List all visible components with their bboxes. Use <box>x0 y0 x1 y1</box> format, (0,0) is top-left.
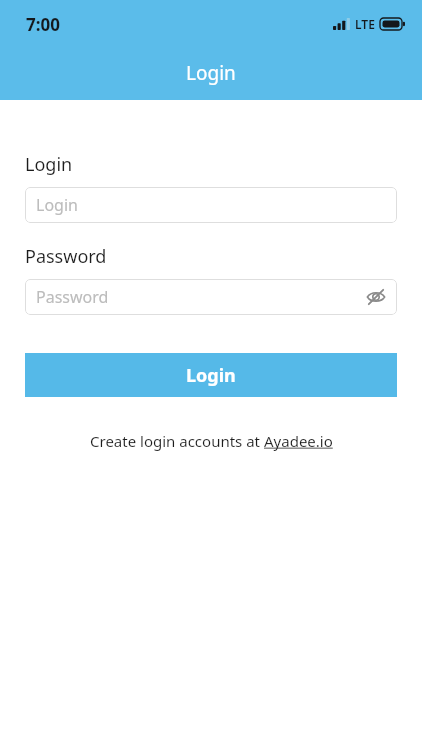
staticText: Login <box>186 60 236 86</box>
button[interactable]: Ayadee.io <box>264 431 333 451</box>
staticText: Password <box>36 286 109 308</box>
staticText: Login <box>36 194 78 216</box>
button[interactable]: Password <box>25 279 397 315</box>
staticText: Create login accounts at <box>90 431 264 451</box>
button[interactable]: Toggle password visibility <box>365 286 387 308</box>
staticText: Login <box>186 363 236 388</box>
staticText: Ayadee.io <box>264 431 333 451</box>
staticText: 7:00 <box>26 13 60 36</box>
staticText: Password <box>25 244 107 269</box>
staticText: Login <box>25 152 73 177</box>
button[interactable]: Login <box>25 187 397 223</box>
button[interactable]: Login <box>25 353 397 397</box>
staticText: LTE <box>355 16 375 32</box>
